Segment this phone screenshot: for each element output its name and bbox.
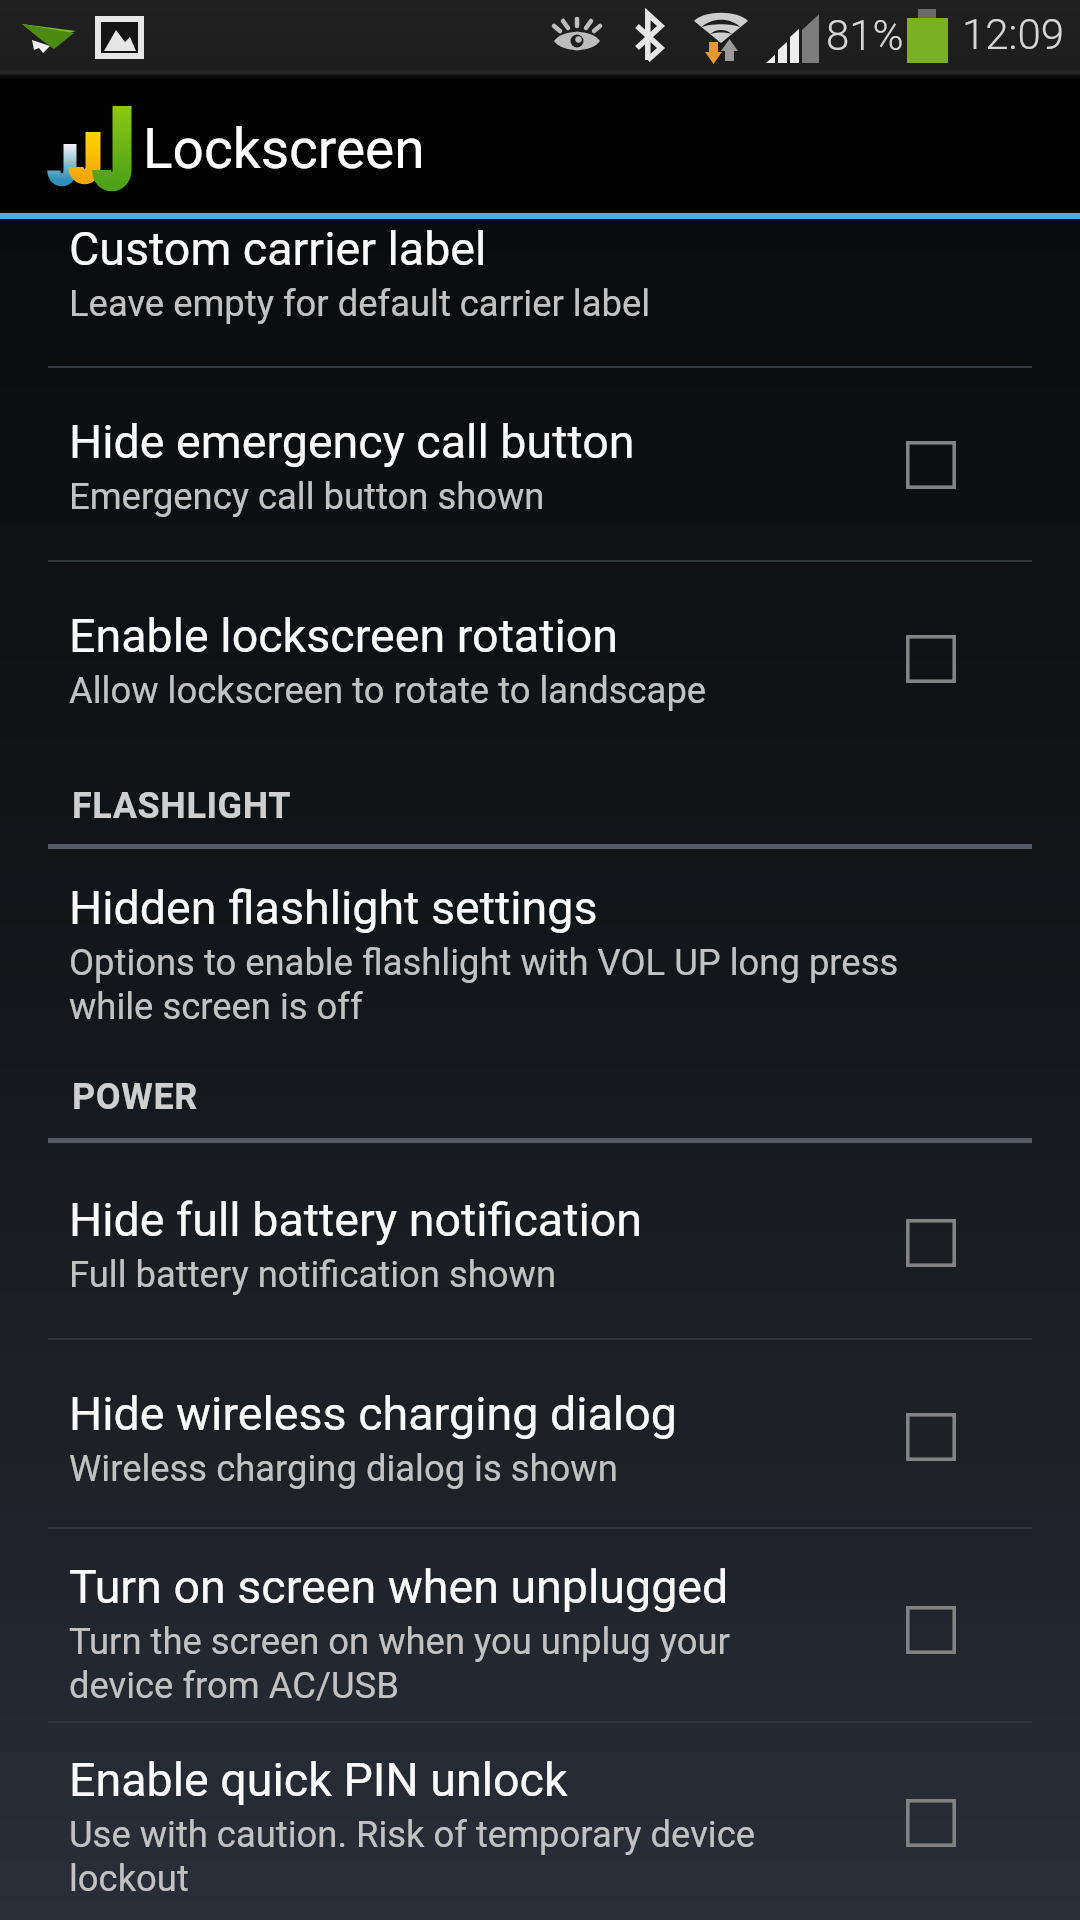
staticText: Emergency call button shown [69, 475, 545, 518]
button[interactable]: Enable quick PIN unlock [878, 1783, 984, 1863]
staticText: Hide full battery notification [69, 1193, 643, 1248]
staticText: Leave empty for default carrier label [69, 282, 651, 325]
button[interactable]: Hide wireless charging dialog [878, 1397, 984, 1477]
button[interactable]: Turn on screen when unplugged [878, 1590, 984, 1670]
button[interactable]: Navigate up: Lockscreen [0, 80, 460, 213]
button[interactable]: Hide emergency call button [878, 425, 984, 505]
staticText: Hide emergency call button [69, 415, 635, 470]
staticText: 12:09 [962, 10, 1065, 59]
button[interactable]: Hide full battery notification [878, 1203, 984, 1283]
staticText: Lockscreen [143, 117, 425, 181]
staticText: Hide wireless charging dialog [69, 1387, 677, 1442]
staticText: Hidden flashlight settings [69, 881, 598, 936]
button[interactable]: Hide emergency call button [0, 368, 1080, 559]
staticText: Allow lockscreen to rotate to landscape [69, 669, 707, 712]
button[interactable]: Custom carrier label [0, 219, 1080, 367]
button[interactable]: Hide wireless charging dialog [0, 1340, 1080, 1528]
staticText: Enable quick PIN unlock [69, 1753, 568, 1808]
staticText: Use with caution. Risk of temporary devi… [69, 1813, 841, 1900]
staticText: Enable lockscreen rotation [69, 609, 619, 664]
staticText: Turn on screen when unplugged [69, 1560, 729, 1615]
button[interactable]: Hide full battery notification [0, 1146, 1080, 1339]
staticText: FLASHLIGHT [72, 785, 292, 827]
staticText: POWER [72, 1076, 198, 1118]
staticText: 81% [826, 11, 904, 60]
staticText: Options to enable flashlight with VOL UP… [69, 941, 902, 1028]
button[interactable]: Hidden flashlight settings [0, 850, 1080, 1048]
button[interactable]: Enable lockscreen rotation [0, 562, 1080, 753]
button[interactable]: Enable quick PIN unlock [0, 1723, 1080, 1920]
staticText: Turn the screen on when you unplug your … [69, 1620, 841, 1707]
button[interactable]: Enable lockscreen rotation [878, 619, 984, 699]
staticText: Custom carrier label [69, 222, 487, 277]
staticText: Wireless charging dialog is shown [69, 1447, 618, 1490]
button[interactable]: Turn on screen when unplugged [0, 1529, 1080, 1722]
staticText: Full battery notification shown [69, 1253, 557, 1296]
